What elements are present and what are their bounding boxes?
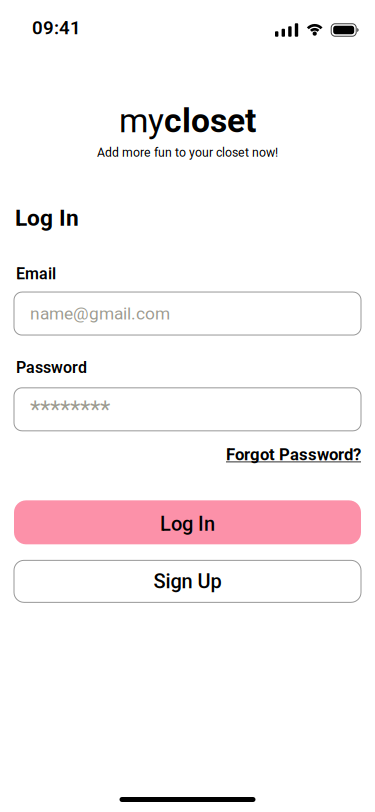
staticText: Log In	[15, 205, 79, 231]
secureTextField[interactable]: ********	[30, 395, 349, 423]
staticText: Forgot Password?	[226, 445, 361, 464]
staticText: Add more fun to your closet now!	[97, 145, 278, 160]
staticText: Sign Up	[153, 570, 221, 593]
staticText: closet	[164, 101, 256, 140]
staticText: Email	[16, 264, 56, 283]
staticText: name@gmail.com	[30, 303, 170, 324]
textField[interactable]: name@gmail.com	[30, 303, 349, 324]
staticText: Log In	[160, 512, 215, 535]
button[interactable]: Forgot Password?	[226, 445, 361, 464]
staticText: Password	[16, 358, 87, 377]
staticText: 09:41	[32, 17, 81, 39]
button[interactable]: Sign Up	[14, 560, 361, 602]
button[interactable]: Log In	[14, 500, 361, 544]
staticText: my	[119, 101, 164, 140]
staticText: ********	[30, 395, 110, 423]
